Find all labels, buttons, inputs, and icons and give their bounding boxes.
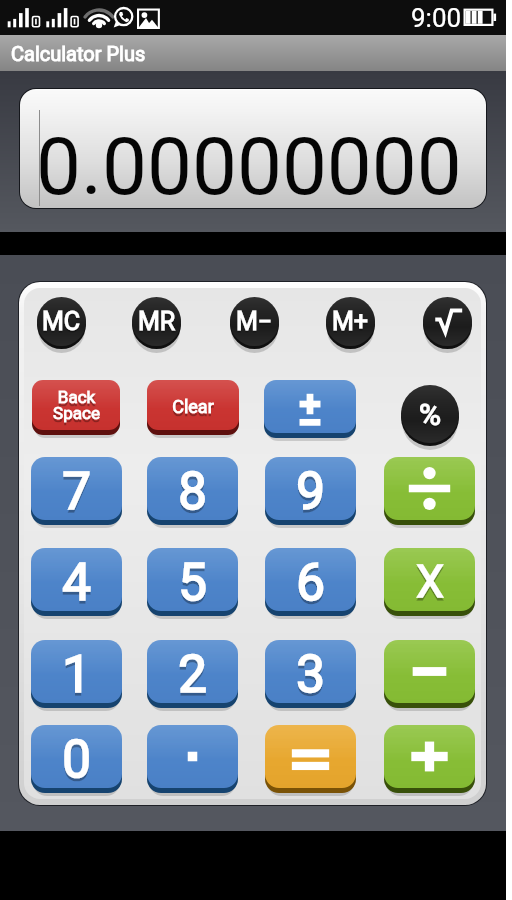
staticText: Back Space — [53, 387, 100, 424]
button[interactable]: 0 — [31, 725, 122, 796]
button[interactable]: Square root — [423, 297, 472, 354]
staticText: 6 — [296, 556, 325, 611]
staticText: 9 — [296, 465, 325, 520]
staticText: MR — [138, 309, 176, 338]
button[interactable]: 8 — [147, 457, 238, 528]
staticText: 2 — [178, 645, 207, 703]
staticText: 5 — [178, 553, 207, 611]
staticText: X — [416, 556, 444, 608]
staticText: MC — [42, 309, 81, 338]
staticText: Clear — [172, 399, 214, 420]
staticText: 4 — [62, 553, 91, 611]
staticText: MC — [42, 307, 81, 336]
staticText: MR — [138, 307, 176, 336]
staticText: 0.00000000 — [36, 120, 462, 208]
staticText: X — [416, 559, 444, 611]
button[interactable]: Back Space — [32, 380, 120, 438]
button[interactable]: 3 — [265, 640, 356, 711]
button[interactable]: 1 — [31, 640, 122, 711]
button[interactable]: 4 — [31, 548, 122, 619]
button[interactable]: M+ — [326, 297, 375, 354]
staticText: 7 — [62, 462, 91, 520]
staticText: M+ — [332, 307, 369, 336]
staticText: 9:00 — [411, 3, 462, 33]
staticText: 2 — [178, 648, 207, 703]
button[interactable]: 6 — [265, 548, 356, 619]
staticText: M+ — [332, 309, 369, 338]
staticText: 3 — [296, 645, 325, 703]
staticText: 1 — [62, 645, 91, 703]
button[interactable]: Clear — [147, 380, 239, 438]
button[interactable]: Calculator Plus — [0, 35, 506, 71]
button[interactable]: 9 — [265, 457, 356, 528]
staticText: 4 — [62, 556, 91, 611]
button[interactable]: MR — [132, 297, 181, 354]
button[interactable]: MC — [37, 297, 86, 354]
staticText: 1 — [62, 648, 91, 703]
staticText: 5 — [178, 556, 207, 611]
staticText: 9 — [296, 462, 325, 520]
staticText: 3 — [296, 648, 325, 703]
button[interactable]: Divide — [384, 457, 475, 528]
button[interactable]: Equals — [265, 725, 356, 796]
staticText: 8 — [178, 462, 207, 520]
button[interactable]: M− — [230, 297, 279, 354]
button[interactable]: Plus minus sign — [264, 380, 356, 441]
button[interactable]: % — [401, 385, 459, 451]
button[interactable]: 5 — [147, 548, 238, 619]
staticText: % — [419, 399, 441, 434]
staticText: 6 — [296, 553, 325, 611]
staticText: Back Space — [53, 390, 100, 427]
staticText: 0 — [62, 733, 91, 788]
button[interactable]: 2 — [147, 640, 238, 711]
button[interactable]: 7 — [31, 457, 122, 528]
staticText: M− — [236, 309, 273, 338]
staticText: 0 — [62, 730, 91, 788]
staticText: M− — [236, 307, 273, 336]
staticText: 7 — [62, 465, 91, 520]
staticText: Clear — [172, 396, 214, 417]
button[interactable]: X — [384, 548, 475, 619]
staticText: 8 — [178, 465, 207, 520]
button[interactable]: Minus — [384, 640, 475, 711]
button[interactable]: Plus — [384, 725, 475, 796]
button[interactable]: Decimal point — [147, 725, 238, 796]
staticText: Calculator Plus — [11, 42, 146, 65]
staticText: % — [419, 397, 441, 432]
